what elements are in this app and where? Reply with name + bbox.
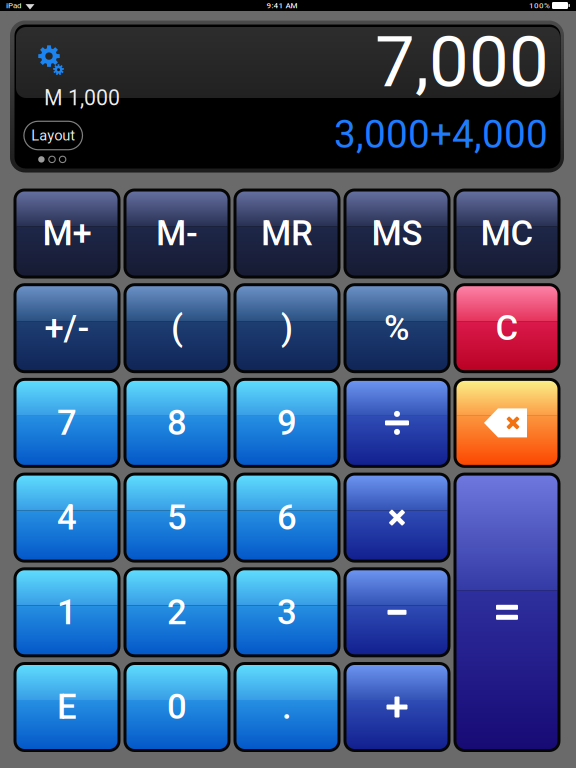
staticText: M+	[42, 213, 91, 254]
button[interactable]: Memory clear	[453, 188, 560, 278]
staticText: 3	[277, 592, 297, 633]
staticText: 3,000+4,000	[334, 112, 548, 157]
staticText: 8	[167, 403, 187, 443]
staticText: 7	[57, 403, 77, 443]
staticText: (	[171, 308, 183, 348]
button[interactable]: Percent	[343, 283, 450, 373]
staticText: 1	[57, 592, 77, 633]
staticText: 6	[277, 497, 297, 538]
staticText: MS	[371, 213, 422, 254]
staticText: M 1,000	[44, 85, 120, 110]
button[interactable]: 8	[123, 378, 230, 468]
button[interactable]: Equals	[453, 473, 560, 752]
button[interactable]: 1	[13, 567, 120, 657]
staticText: 5	[167, 497, 187, 538]
staticText: 9	[277, 403, 297, 443]
button[interactable]: E	[13, 662, 120, 752]
staticText: 2	[167, 592, 187, 633]
staticText: MC	[480, 213, 533, 254]
button[interactable]: Memory recall	[233, 188, 340, 278]
staticText: )	[281, 308, 293, 348]
button[interactable]: 7	[13, 378, 120, 468]
staticText: Layout	[31, 127, 75, 144]
staticText: 7,000	[375, 21, 549, 103]
staticText: 9:41 AM	[266, 1, 297, 10]
button[interactable]: Open parenthesis	[123, 283, 230, 373]
button[interactable]: 3	[233, 567, 340, 657]
button[interactable]: 0	[123, 662, 230, 752]
staticText: MR	[261, 213, 313, 254]
button[interactable]: Memory store	[343, 188, 450, 278]
button[interactable]: Decimal point	[233, 662, 340, 752]
staticText: 0	[167, 687, 187, 727]
staticText: E	[57, 687, 77, 727]
staticText: iPad	[6, 1, 22, 10]
button[interactable]: Memory add	[13, 188, 120, 278]
staticText: C	[495, 308, 518, 348]
button[interactable]: 9	[233, 378, 340, 468]
button[interactable]: Settings	[34, 39, 66, 73]
button[interactable]: 6	[233, 473, 340, 563]
button[interactable]: 4	[13, 473, 120, 563]
staticText: M-	[156, 213, 198, 254]
button[interactable]: Clear	[453, 283, 560, 373]
button[interactable]: Multiply	[343, 473, 450, 563]
button[interactable]: 2	[123, 567, 230, 657]
button[interactable]: Divide	[343, 378, 450, 468]
button[interactable]: Close parenthesis	[233, 283, 340, 373]
staticText: .	[282, 687, 292, 727]
button[interactable]: Minus	[343, 567, 450, 657]
button[interactable]: Delete	[453, 378, 560, 468]
staticText: +/-	[44, 308, 89, 348]
button[interactable]: Layout	[24, 121, 82, 150]
button[interactable]: Plus minus	[13, 283, 120, 373]
button[interactable]: Plus	[343, 662, 450, 752]
button[interactable]: Memory subtract	[123, 188, 230, 278]
staticText: 100%	[529, 1, 550, 10]
staticText: %	[384, 308, 410, 348]
staticText: 4	[57, 497, 77, 538]
button[interactable]: 5	[123, 473, 230, 563]
